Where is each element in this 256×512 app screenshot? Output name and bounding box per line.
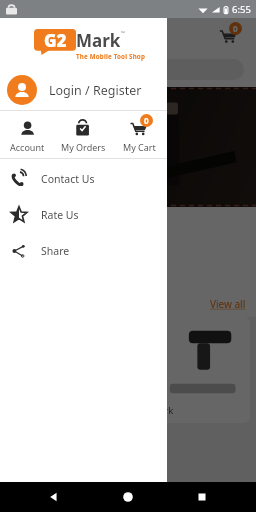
button[interactable]: Box bbox=[16, 217, 70, 287]
button[interactable]: Home bbox=[120, 489, 136, 505]
button[interactable]: Rate Us bbox=[0, 201, 167, 229]
button[interactable] bbox=[12, 59, 244, 80]
button[interactable]: Account bbox=[0, 113, 55, 158]
staticText: Login / Register bbox=[49, 82, 142, 99]
staticText: G2Mark bbox=[138, 404, 174, 417]
staticText: My Cart bbox=[123, 141, 156, 153]
staticText: My Orders bbox=[61, 141, 106, 153]
staticText: W+ bbox=[2, 99, 30, 122]
staticText: View all bbox=[210, 297, 246, 311]
button[interactable]: Recent apps bbox=[194, 489, 210, 505]
button[interactable]: Login / Register bbox=[0, 70, 167, 110]
staticText: Contact Us bbox=[41, 172, 95, 186]
staticText: The Mobile Tool Shop bbox=[76, 52, 146, 60]
staticText: Mark bbox=[76, 29, 121, 52]
staticText: G2 bbox=[44, 29, 67, 51]
button[interactable]: Add to wishlist bbox=[132, 317, 250, 423]
button[interactable]: View all bbox=[210, 297, 246, 311]
staticText: Free bbox=[2, 130, 36, 150]
staticText: ™ bbox=[121, 30, 125, 37]
staticText: 0 bbox=[144, 115, 149, 126]
button[interactable]: Share bbox=[0, 237, 167, 265]
staticText: Rate Us bbox=[41, 208, 79, 222]
staticText: 6:55 bbox=[232, 3, 251, 16]
button[interactable]: Cart bbox=[218, 24, 240, 46]
button[interactable]: W+ bbox=[0, 87, 256, 207]
staticText: Account bbox=[10, 141, 45, 153]
button[interactable]: Back bbox=[46, 489, 62, 505]
staticText: nd 580W bbox=[2, 152, 41, 164]
staticText: Share bbox=[41, 244, 70, 258]
staticText: 0 bbox=[233, 23, 238, 34]
button[interactable]: Contact Us bbox=[0, 165, 167, 193]
button[interactable]: My Orders bbox=[55, 113, 111, 158]
button[interactable]: 0 bbox=[111, 113, 167, 158]
